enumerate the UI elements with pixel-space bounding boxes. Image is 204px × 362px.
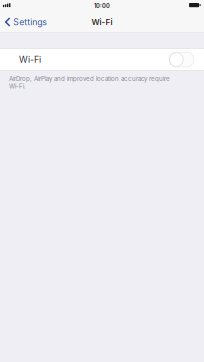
staticText: AirDrop, AirPlay and improved location a… <box>9 75 170 90</box>
staticText: 10:00 <box>94 2 110 9</box>
staticText: Wi-Fi <box>91 17 112 27</box>
button[interactable]: Wi-Fi <box>0 49 204 70</box>
staticText: Settings <box>13 17 47 27</box>
button[interactable]: Settings <box>0 13 51 31</box>
staticText: Wi-Fi <box>19 54 41 65</box>
